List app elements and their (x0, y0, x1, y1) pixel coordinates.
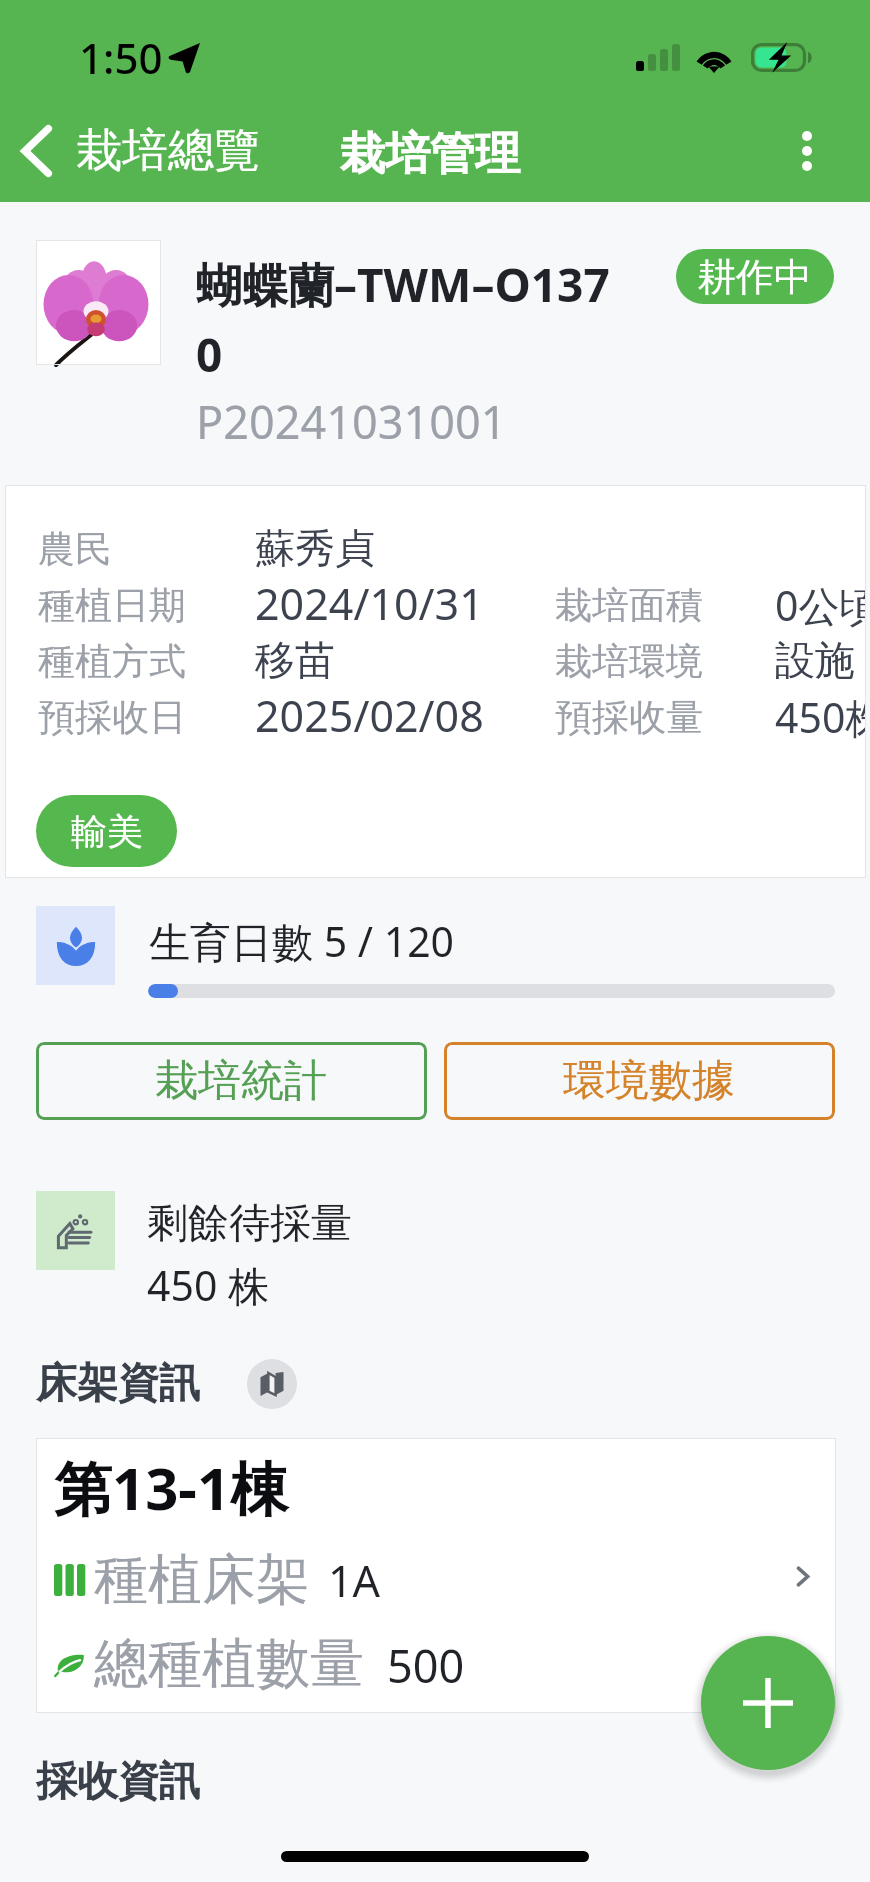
staticText: 剩餘待採量 (147, 1198, 352, 1250)
staticText: 1A (328, 1551, 381, 1610)
button[interactable]: 耕作中 (676, 249, 834, 304)
staticText: 栽培環境 (555, 638, 703, 685)
staticText: 設施 (775, 635, 855, 685)
button[interactable]: 輸美 (36, 795, 177, 867)
staticText: 種植方式 (38, 638, 186, 685)
staticText: 種植日期 (38, 582, 186, 629)
staticText: 栽培管理 (340, 126, 520, 183)
staticText: 2024/10/31 (255, 574, 484, 633)
staticText: 預採收日 (38, 694, 186, 741)
button[interactable]: 栽培總覽 (14, 120, 260, 182)
staticText: 栽培面積 (555, 582, 703, 629)
staticText: 500 (387, 1635, 465, 1696)
staticText: 耕作中 (698, 253, 812, 301)
staticText: 環境數據 (563, 1054, 735, 1108)
staticText: 蘇秀貞 (255, 523, 375, 573)
staticText: 總種植數量 (94, 1630, 364, 1698)
staticText: 床架資訊 (36, 1358, 200, 1410)
staticText: 450株 (775, 689, 866, 745)
staticText: 蝴蝶蘭–TWM–O137 0 (196, 253, 610, 386)
staticText: 栽培總覽 (76, 122, 260, 180)
staticText: 輸美 (71, 809, 143, 854)
staticText: 種植床架 (94, 1546, 310, 1614)
staticText: 450 株 (147, 1257, 270, 1313)
button[interactable]: 環境數據 (444, 1042, 835, 1120)
staticText: 農民 (38, 526, 112, 573)
staticText: 採收資訊 (36, 1756, 200, 1808)
staticText: 生育日數 5 / 120 (149, 913, 455, 969)
staticText: 2025/02/08 (255, 686, 484, 745)
button[interactable]: Map (247, 1359, 297, 1409)
button[interactable]: Add (701, 1636, 835, 1770)
button[interactable]: More options (776, 120, 838, 182)
staticText: 第13-1棟 (54, 1448, 289, 1527)
staticText: 栽培統計 (155, 1054, 327, 1108)
button[interactable]: 栽培統計 (36, 1042, 427, 1120)
staticText: 移苗 (255, 635, 335, 685)
staticText: 預採收量 (555, 694, 703, 741)
staticText: 0公頃 (775, 577, 866, 633)
staticText: 1:50 (79, 29, 163, 86)
staticText: P20241031001 (196, 391, 507, 452)
